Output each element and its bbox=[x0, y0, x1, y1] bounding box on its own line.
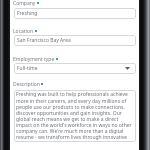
staticText: Description bbox=[13, 81, 40, 88]
button[interactable]: San Francisco Bay Area bbox=[14, 35, 136, 46]
button[interactable]: Freshing bbox=[14, 8, 136, 19]
staticText: Full-time bbox=[17, 65, 38, 72]
staticText: San Francisco Bay Area bbox=[17, 37, 71, 44]
staticText: Employment type bbox=[13, 56, 55, 63]
button[interactable]: Full-time bbox=[14, 63, 136, 74]
other: Open employment type menu bbox=[125, 67, 130, 70]
button[interactable] bbox=[14, 90, 136, 142]
staticText: Freshing bbox=[17, 10, 38, 17]
staticText: Location bbox=[13, 28, 34, 35]
staticText: Company bbox=[13, 0, 36, 7]
staticText: Freshing was built to help professionals… bbox=[16, 91, 134, 141]
